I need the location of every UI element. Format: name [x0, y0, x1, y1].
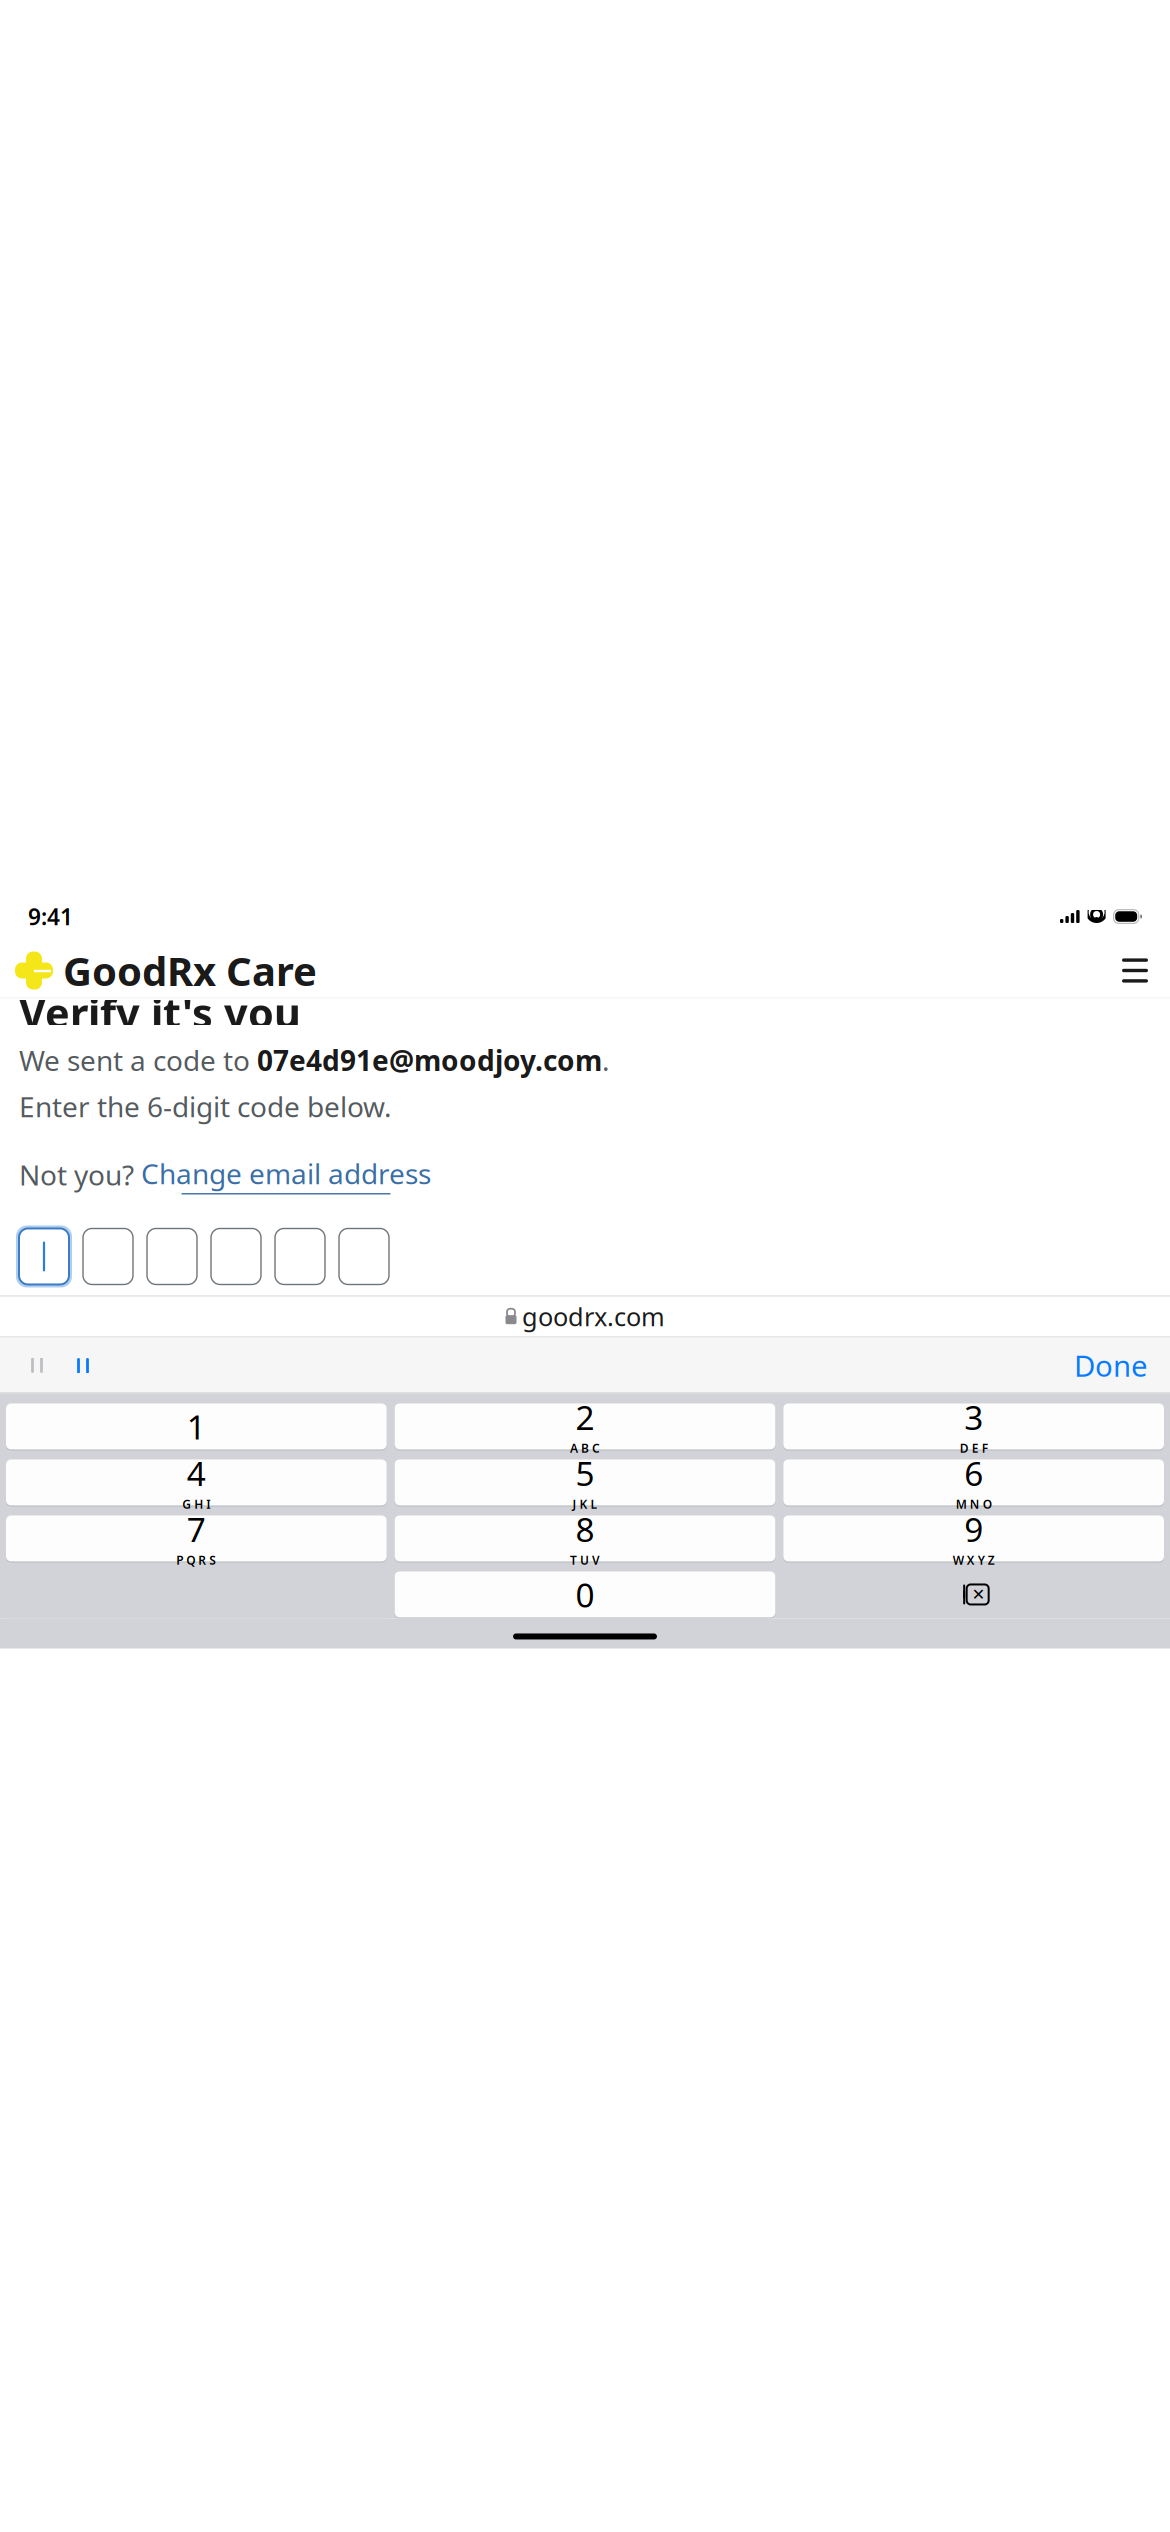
staticText: ✕ [972, 1585, 985, 1604]
staticText: 9 [964, 1507, 983, 1551]
staticText: Not you? [19, 1156, 141, 1193]
button[interactable]: Digit 4 [208, 1225, 264, 1287]
button[interactable]: Previous field [14, 1343, 60, 1387]
button[interactable]: GoodRx Care home [14, 944, 317, 997]
staticText: 0 [575, 1572, 594, 1617]
staticText: T U V [570, 1552, 600, 1568]
button[interactable]: 0 [395, 1570, 775, 1618]
button[interactable]: 2 A B C [395, 1402, 775, 1450]
staticText: W X Y Z [953, 1552, 995, 1568]
staticText: We sent a code to [19, 1041, 257, 1079]
button[interactable]: 7 P Q R S [6, 1514, 387, 1562]
staticText: A B C [570, 1440, 600, 1456]
staticText: 3 [964, 1395, 983, 1439]
button[interactable]: 1 [6, 1402, 387, 1450]
staticText: M N O [956, 1496, 992, 1512]
staticText: GoodRx Care [63, 944, 317, 997]
button[interactable]: 8 T U V [395, 1514, 775, 1562]
button[interactable]: Digit 6 [336, 1225, 392, 1287]
button[interactable]: Digit 1 [16, 1225, 72, 1287]
staticText: 2 [575, 1395, 594, 1439]
button[interactable]: Delete [783, 1570, 1164, 1618]
staticText: G H I [182, 1496, 210, 1512]
staticText: 4 [187, 1451, 206, 1495]
staticText: 6 [964, 1451, 983, 1495]
button[interactable]: Digit 3 [144, 1225, 200, 1287]
staticText: D E F [960, 1440, 988, 1456]
button[interactable]: Done [1066, 1343, 1156, 1387]
button[interactable]: Menu [1114, 952, 1156, 989]
staticText: J K L [572, 1496, 597, 1512]
button[interactable]: Digit 2 [80, 1225, 136, 1287]
button[interactable]: 4 G H I [6, 1458, 387, 1506]
button[interactable]: 9 W X Y Z [783, 1514, 1164, 1562]
staticText: 8 [575, 1507, 594, 1551]
button[interactable]: 5 J K L [395, 1458, 775, 1506]
staticText: 9:41 [28, 901, 73, 932]
staticText: Change email address [141, 1155, 431, 1192]
button[interactable]: Address, goodrx.com [0, 1296, 1170, 1336]
staticText: Enter the 6-digit code below. [19, 1088, 392, 1125]
staticText: Verify it's you [19, 985, 301, 1040]
staticText: P Q R S [176, 1552, 216, 1568]
button[interactable]: 3 D E F [783, 1402, 1164, 1450]
button[interactable]: 6 M N O [783, 1458, 1164, 1506]
button[interactable]: Next field [60, 1343, 106, 1387]
staticText: 07e4d91e@moodjoy.com [257, 1041, 602, 1079]
staticText: 7 [187, 1507, 206, 1551]
staticText: 5 [575, 1451, 594, 1495]
staticText: Done [1074, 1346, 1148, 1385]
button[interactable]: Change email address [141, 1155, 431, 1194]
staticText: . [602, 1041, 610, 1079]
button[interactable]: Digit 5 [272, 1225, 328, 1287]
staticText: goodrx.com [522, 1300, 665, 1333]
staticText: 1 [187, 1404, 206, 1449]
